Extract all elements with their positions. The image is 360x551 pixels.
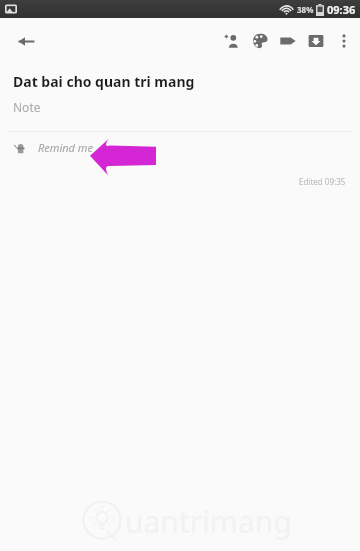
staticText: Remind me — [38, 140, 93, 155]
staticText: Dat bai cho quan tri mang — [13, 72, 195, 91]
staticText: 09:36 — [327, 2, 356, 17]
button[interactable]: Back — [8, 23, 44, 59]
button[interactable]: Remind me — [0, 132, 360, 162]
staticText: Note — [13, 99, 41, 115]
button[interactable]: Archive — [302, 21, 330, 61]
button[interactable]: Add collaborator — [218, 21, 246, 61]
staticText: Edited 09:35 — [299, 176, 346, 187]
button[interactable]: Change colour — [246, 21, 274, 61]
button[interactable]: Label — [274, 21, 302, 61]
button[interactable]: More options — [330, 21, 358, 61]
staticText: 38% — [297, 4, 314, 15]
